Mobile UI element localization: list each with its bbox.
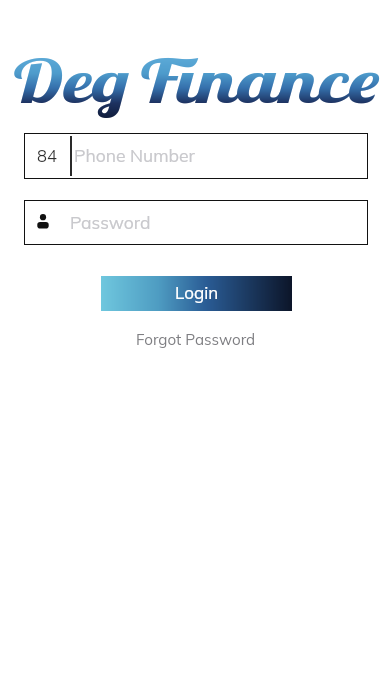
staticText: Login <box>175 282 219 303</box>
staticText: 84 <box>37 145 57 166</box>
button[interactable]: Password <box>24 200 368 245</box>
button[interactable]: 84 <box>24 133 368 179</box>
staticText: Deg <box>10 43 130 118</box>
staticText: Password <box>70 211 151 233</box>
staticText: Finance <box>132 43 381 118</box>
button[interactable]: Login <box>101 276 292 311</box>
button[interactable]: Forgot Password <box>136 330 256 349</box>
staticText: Phone Number <box>74 144 195 166</box>
